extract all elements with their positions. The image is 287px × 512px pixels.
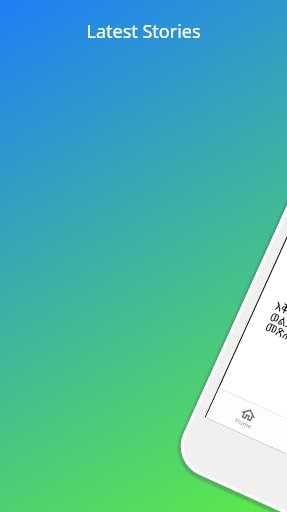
staticText: እቅ ልማት ወረዳ <box>272 297 287 341</box>
staticText: Home <box>234 416 253 431</box>
staticText: መጽሔቱ ዜና <box>263 318 287 355</box>
staticText: ወልደየሱስ ተስፋዬ <box>267 308 287 356</box>
staticText: Latest Stories <box>0 19 287 44</box>
button[interactable]: Home <box>222 400 270 436</box>
